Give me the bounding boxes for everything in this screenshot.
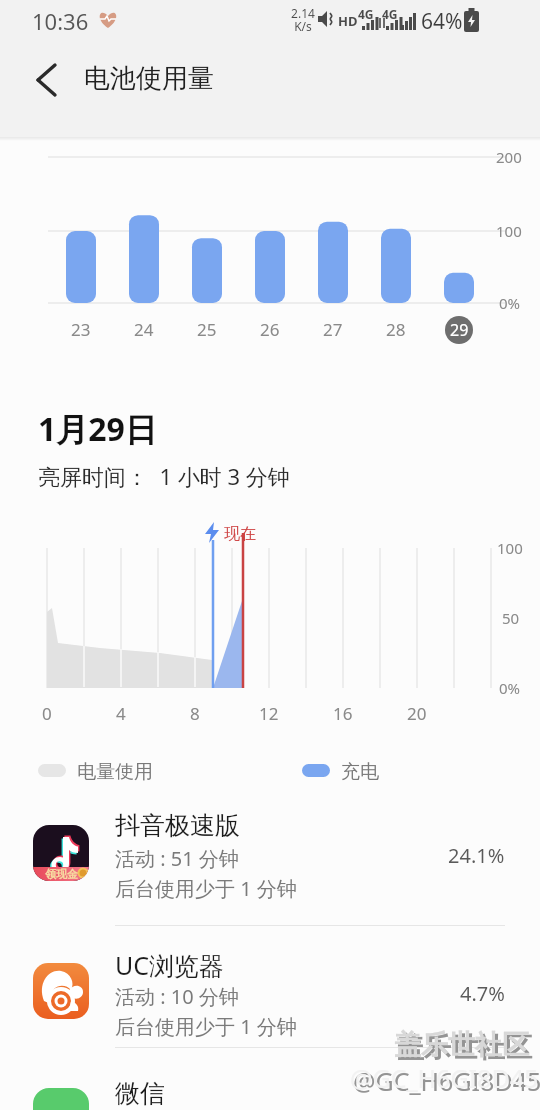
staticText: 后台使用少于 1 分钟 [115, 1013, 297, 1040]
staticText: 活动 : 10 分钟 [115, 983, 239, 1010]
staticText: 2.14 K/s [291, 5, 315, 35]
staticText: 领现金 [45, 867, 78, 881]
staticText: 26 [260, 318, 280, 341]
staticText: 电量使用 [77, 760, 153, 784]
staticText: 后台使用少于 1 分钟 [115, 875, 297, 902]
staticText: 200 [496, 147, 522, 167]
staticText: 27 [323, 318, 343, 341]
staticText: 微信 [115, 1078, 165, 1109]
staticText: 25 [197, 318, 217, 341]
staticText: 28 [386, 318, 406, 341]
staticText: 16 [333, 702, 353, 725]
staticText: 现在 [224, 524, 256, 544]
staticText: 4G [382, 6, 398, 22]
staticText: 抖音极速版 [115, 810, 240, 841]
staticText: 1月29日 [38, 407, 157, 451]
staticText: 24.1% [448, 842, 505, 869]
staticText: 64% [421, 7, 463, 36]
staticText: 100 [496, 221, 522, 241]
staticText: 100 [497, 538, 523, 558]
staticText: 20 [407, 702, 427, 725]
staticText: 盖乐世社区 [397, 1031, 532, 1065]
staticText: HD [338, 12, 358, 30]
staticText: 0% [499, 293, 521, 313]
staticText: 0 [42, 702, 52, 725]
staticText: 24 [134, 318, 154, 341]
staticText: 盖乐世社区 [394, 1028, 529, 1062]
staticText: @GC_H6GI8D45 [350, 1061, 539, 1095]
staticText: 0% [499, 678, 521, 698]
staticText: 充电 [341, 760, 379, 784]
staticText: 4G [358, 6, 374, 22]
staticText: 亮屏时间： 1 小时 3 分钟 [38, 461, 290, 491]
staticText: 50 [502, 608, 520, 628]
button[interactable]: UC浏览器 [0, 948, 540, 1060]
button[interactable] [24, 58, 68, 102]
staticText: 29 [450, 319, 469, 341]
staticText: @GC_H6GI8D45 [353, 1064, 540, 1098]
staticText: UC浏览器 [115, 948, 225, 982]
staticText: 23 [71, 318, 91, 341]
staticText: 10:36 [32, 6, 89, 36]
staticText: 12 [259, 702, 279, 725]
button[interactable]: 领现金 [0, 810, 540, 922]
staticText: 4.7% [460, 980, 505, 1007]
staticText: 电池使用量 [84, 62, 214, 95]
staticText: 4 [116, 702, 126, 725]
staticText: 活动 : 51 分钟 [115, 845, 239, 872]
staticText: 8 [190, 702, 200, 725]
